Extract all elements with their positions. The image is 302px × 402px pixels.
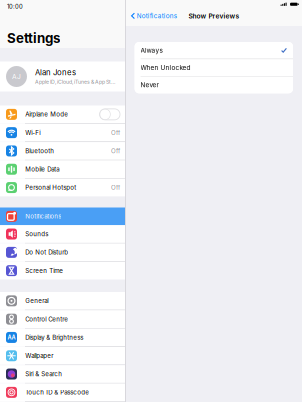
button[interactable]: Siri & Search <box>0 365 125 383</box>
staticText: Wi-Fi <box>25 129 40 136</box>
button[interactable]: Wallpaper <box>0 347 125 365</box>
button[interactable]: Screen Time <box>0 262 125 279</box>
staticText: AJ <box>12 72 21 81</box>
staticText: Off <box>111 147 120 155</box>
staticText: 10:00 <box>7 3 23 10</box>
staticText: AA <box>7 334 15 341</box>
staticText: Wallpaper <box>25 352 53 359</box>
staticText: Mobile Data <box>25 165 59 173</box>
staticText: Notifications <box>25 213 61 220</box>
staticText: When Unlocked <box>141 64 191 71</box>
button[interactable]: Personal Hotspot <box>0 179 125 196</box>
staticText: Show Previews <box>189 12 240 20</box>
button[interactable]: Do Not Disturb <box>0 243 125 261</box>
staticText: Personal Hotspot <box>25 184 76 191</box>
staticText: Off <box>111 129 120 136</box>
button[interactable]: Wi-Fi <box>0 124 125 141</box>
button[interactable]: Airplane Mode <box>0 105 125 123</box>
button[interactable]: Touch ID & Passcode <box>0 383 125 401</box>
button[interactable]: Always <box>135 42 293 59</box>
staticText: Airplane Mode <box>25 111 68 118</box>
staticText: Notifications <box>137 12 177 20</box>
button[interactable]: Notifications <box>0 207 125 225</box>
staticText: Apple ID, iCloud, iTunes & App St… <box>35 79 115 85</box>
button[interactable]: Never <box>135 77 293 93</box>
staticText: Siri & Search <box>25 370 62 378</box>
staticText: Never <box>141 81 159 89</box>
button[interactable]: Mobile Data <box>0 160 125 178</box>
button[interactable]: Sounds <box>0 225 125 243</box>
staticText: Display & Brightness <box>25 334 83 341</box>
staticText: General <box>25 297 48 304</box>
button[interactable]: Bluetooth <box>0 142 125 160</box>
button[interactable]: Notifications <box>131 12 177 20</box>
staticText: Always <box>141 46 163 54</box>
staticText: Control Centre <box>25 315 68 323</box>
staticText: Settings <box>7 30 60 46</box>
staticText: Bluetooth <box>25 147 54 155</box>
button[interactable]: AJ <box>0 61 125 91</box>
button[interactable]: When Unlocked <box>135 59 293 76</box>
staticText: Do Not Disturb <box>25 249 68 256</box>
staticText: Sounds <box>25 230 48 238</box>
staticText: Touch ID & Passcode <box>25 389 89 396</box>
button[interactable]: General <box>0 292 125 310</box>
staticText: Screen Time <box>25 267 63 274</box>
button[interactable]: AA <box>0 329 125 346</box>
staticText: Alan Jones <box>35 68 76 77</box>
staticText: Off <box>111 184 120 191</box>
button[interactable]: Control Centre <box>0 310 125 328</box>
